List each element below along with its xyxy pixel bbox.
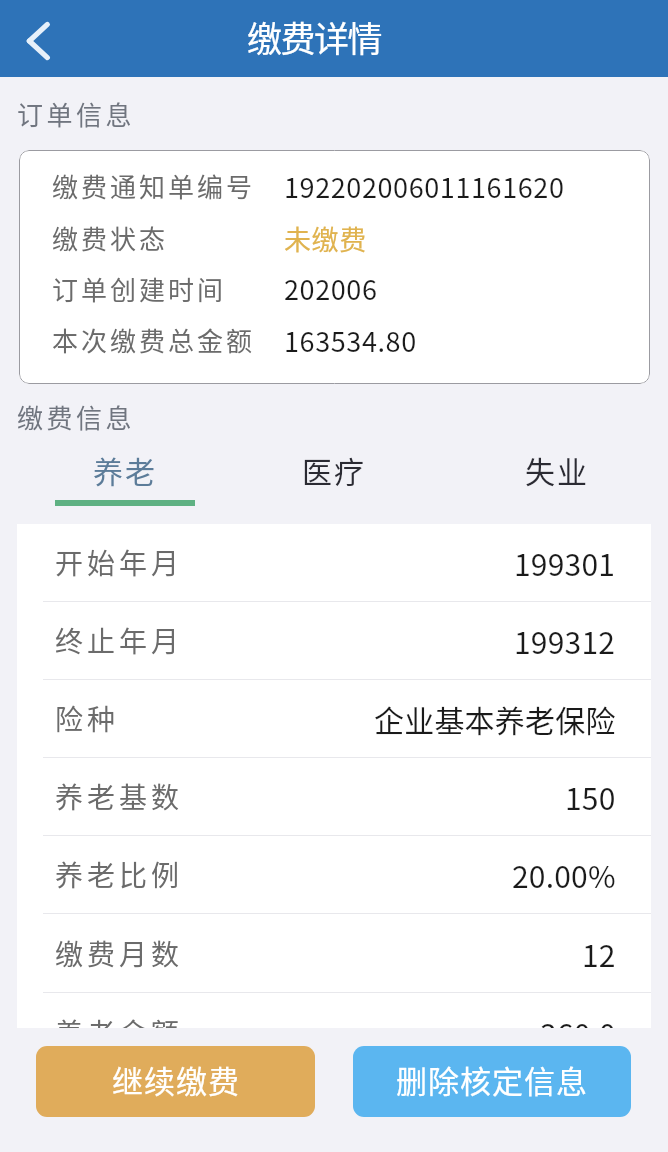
button[interactable]: 养老比例 — [17, 836, 651, 913]
staticText: 险种 — [55, 698, 120, 739]
staticText: 20.00% — [512, 853, 616, 896]
button[interactable]: 继续缴费 — [36, 1046, 315, 1117]
staticText: 12 — [582, 932, 616, 975]
staticText: 150 — [565, 775, 616, 818]
staticText: 163534.80 — [284, 321, 417, 360]
staticText: 养老基数 — [55, 776, 184, 817]
button[interactable]: 养老 — [0, 450, 222, 524]
button[interactable]: 终止年月 — [17, 602, 651, 679]
staticText: 医疗 — [302, 448, 366, 491]
staticText: 缴费状态 — [52, 219, 169, 257]
staticText: 192202006011161620 — [284, 167, 565, 206]
button[interactable]: Back — [10, 13, 66, 69]
staticText: 199301 — [514, 541, 616, 584]
staticText: 202006 — [284, 269, 378, 308]
staticText: 本次缴费总金额 — [52, 321, 256, 359]
button[interactable]: 缴费月数 — [17, 914, 651, 992]
staticText: 缴费详情 — [247, 11, 382, 62]
button[interactable]: 医疗 — [222, 450, 445, 524]
staticText: 订单信息 — [17, 95, 136, 133]
staticText: 360.0 — [540, 1011, 616, 1028]
staticText: 缴费信息 — [17, 398, 136, 436]
button[interactable]: 失业 — [445, 450, 668, 524]
staticText: 继续缴费 — [112, 1057, 240, 1102]
button[interactable]: 养老基数 — [17, 758, 651, 835]
staticText: 未缴费 — [284, 219, 367, 258]
button[interactable]: 险种 — [17, 680, 651, 757]
staticText: 企业基本养老保险 — [374, 697, 616, 740]
staticText: 终止年月 — [55, 620, 184, 661]
staticText: 缴费通知单编号 — [52, 167, 256, 205]
staticText: 养老比例 — [55, 854, 184, 895]
button[interactable]: 养老金额 — [17, 993, 651, 1028]
staticText: 失业 — [525, 448, 589, 491]
staticText: 订单创建时间 — [52, 270, 227, 308]
staticText: 开始年月 — [55, 542, 184, 583]
staticText: 199312 — [514, 619, 616, 662]
staticText: 养老金额 — [55, 1012, 184, 1028]
staticText: 养老 — [93, 448, 157, 491]
staticText: 删除核定信息 — [396, 1057, 588, 1102]
button[interactable]: 删除核定信息 — [353, 1046, 631, 1117]
button[interactable]: 开始年月 — [17, 524, 651, 601]
staticText: 缴费月数 — [55, 933, 184, 974]
